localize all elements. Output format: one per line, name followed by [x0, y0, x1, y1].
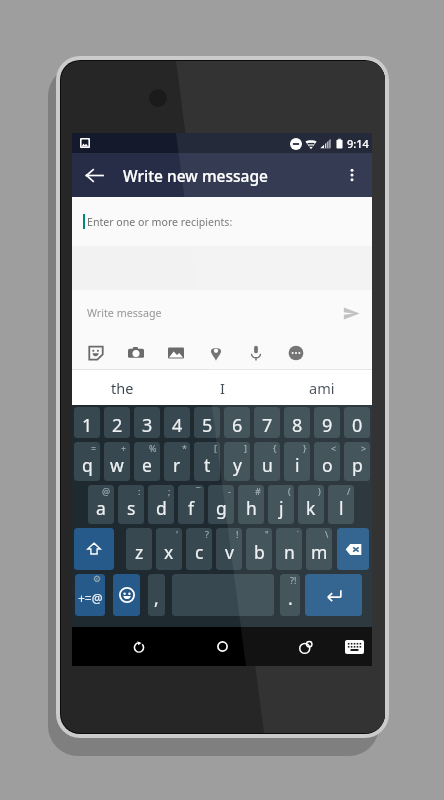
- staticText: +=@: [78, 590, 103, 606]
- button[interactable]: [172, 574, 274, 616]
- button[interactable]: Hide keyboard: [334, 633, 374, 660]
- button[interactable]: [113, 574, 140, 616]
- staticText: i: [295, 453, 300, 477]
- button[interactable]: 8: [284, 407, 310, 438]
- button[interactable]: 1: [74, 407, 100, 438]
- button[interactable]: .: [280, 574, 300, 616]
- staticText: n: [284, 540, 295, 564]
- button[interactable]: y: [224, 442, 250, 481]
- button[interactable]: Enter one or more recipients:: [72, 197, 372, 246]
- button[interactable]: m: [306, 528, 332, 570]
- button[interactable]: n: [276, 528, 302, 570]
- button[interactable]: w: [104, 442, 130, 481]
- staticText: the: [111, 378, 134, 398]
- button[interactable]: d: [148, 485, 174, 524]
- staticText: 0: [352, 413, 363, 438]
- staticText: 1: [82, 413, 93, 438]
- staticText: Write new message: [123, 165, 268, 186]
- button[interactable]: f: [178, 485, 204, 524]
- staticText: d: [156, 496, 167, 520]
- button[interactable]: I: [172, 370, 272, 405]
- button[interactable]: 9: [314, 407, 340, 438]
- button[interactable]: j: [268, 485, 294, 524]
- button[interactable]: the: [72, 370, 172, 405]
- button[interactable]: 7: [254, 407, 280, 438]
- button[interactable]: Sticker: [76, 336, 116, 369]
- button[interactable]: h: [238, 485, 264, 524]
- staticText: 3: [142, 413, 153, 438]
- staticText: 5: [202, 413, 213, 438]
- button[interactable]: More options: [332, 153, 372, 197]
- button[interactable]: Camera: [116, 336, 156, 369]
- staticText: 6: [232, 413, 243, 438]
- staticText: g: [216, 496, 227, 520]
- staticText: 9:14: [347, 136, 369, 151]
- button[interactable]: v: [216, 528, 242, 570]
- staticText: 4: [172, 413, 183, 438]
- button[interactable]: 0: [344, 407, 370, 438]
- button[interactable]: Recent apps: [286, 633, 326, 660]
- button[interactable]: b: [246, 528, 272, 570]
- staticText: !: [236, 528, 239, 540]
- button[interactable]: g: [208, 485, 234, 524]
- button[interactable]: ami: [272, 370, 372, 405]
- staticText: Enter one or more recipients:: [87, 215, 233, 229]
- staticText: ]: [244, 442, 247, 454]
- staticText: q: [82, 453, 93, 477]
- button[interactable]: o: [314, 442, 340, 481]
- staticText: ?: [205, 528, 209, 540]
- button[interactable]: e: [134, 442, 160, 481]
- button[interactable]: Send: [330, 290, 372, 336]
- button[interactable]: Voice input: [236, 336, 276, 369]
- button[interactable]: a: [88, 485, 114, 524]
- staticText: b: [254, 540, 265, 564]
- button[interactable]: Gallery: [156, 336, 196, 369]
- staticText: v: [225, 540, 234, 564]
- button[interactable]: Back: [72, 153, 116, 197]
- button[interactable]: u: [254, 442, 280, 481]
- button[interactable]: ,: [148, 574, 165, 616]
- staticText: 8: [292, 413, 303, 438]
- button[interactable]: s: [118, 485, 144, 524]
- button[interactable]: Home: [202, 633, 242, 660]
- staticText: r: [173, 453, 181, 477]
- staticText: ‾: [196, 485, 201, 497]
- button[interactable]: z: [126, 528, 152, 570]
- staticText: +: [121, 442, 127, 454]
- staticText: :: [138, 485, 141, 497]
- staticText: ': [176, 528, 179, 540]
- button[interactable]: [305, 574, 362, 616]
- button[interactable]: x: [156, 528, 182, 570]
- button[interactable]: t: [194, 442, 220, 481]
- button[interactable]: c: [186, 528, 212, 570]
- staticText: s: [127, 496, 136, 520]
- button[interactable]: i: [284, 442, 310, 481]
- button[interactable]: 5: [194, 407, 220, 438]
- button[interactable]: r: [164, 442, 190, 481]
- staticText: x: [164, 540, 174, 564]
- staticText: w: [110, 453, 124, 477]
- button[interactable]: k: [298, 485, 324, 524]
- button[interactable]: Location: [196, 336, 236, 369]
- button[interactable]: 4: [164, 407, 190, 438]
- staticText: {: [273, 442, 277, 454]
- staticText: .: [288, 586, 293, 610]
- button[interactable]: 2: [104, 407, 130, 438]
- staticText: -: [228, 485, 231, 497]
- button[interactable]: l: [328, 485, 354, 524]
- button[interactable]: [337, 528, 369, 570]
- button[interactable]: Back: [119, 633, 159, 660]
- staticText: j: [279, 496, 284, 520]
- staticText: Write message: [87, 306, 162, 321]
- button[interactable]: +=@: [75, 574, 105, 616]
- staticText: (: [288, 485, 291, 497]
- button[interactable]: 3: [134, 407, 160, 438]
- button[interactable]: p: [344, 442, 370, 481]
- button[interactable]: More: [276, 336, 316, 369]
- button[interactable]: q: [74, 442, 100, 481]
- staticText: *: [182, 442, 187, 454]
- button[interactable]: [74, 528, 114, 570]
- staticText: ?!: [290, 574, 297, 586]
- button[interactable]: 6: [224, 407, 250, 438]
- staticText: ,: [154, 586, 159, 610]
